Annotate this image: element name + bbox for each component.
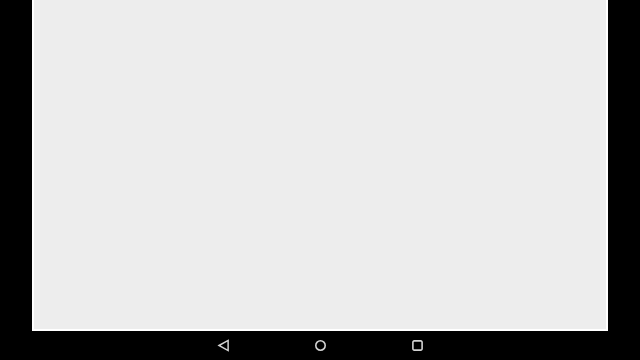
button[interactable]: Back: [203, 331, 243, 360]
button[interactable]: Recent apps: [397, 331, 437, 360]
button[interactable]: Home: [300, 331, 340, 360]
